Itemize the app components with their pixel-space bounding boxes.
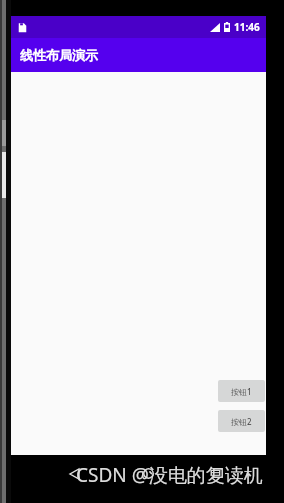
- staticText: CSDN @没电的复读机: [76, 462, 263, 488]
- button[interactable]: 按钮2: [218, 410, 265, 432]
- staticText: 11:46: [234, 20, 260, 34]
- staticText: 线性布局演示: [20, 47, 98, 63]
- button[interactable]: Home: [137, 462, 159, 484]
- staticText: 按钮2: [231, 416, 252, 427]
- button[interactable]: Back: [63, 463, 85, 485]
- button[interactable]: 按钮1: [218, 380, 265, 402]
- staticText: 按钮1: [231, 386, 252, 397]
- button[interactable]: Recent apps: [207, 462, 229, 484]
